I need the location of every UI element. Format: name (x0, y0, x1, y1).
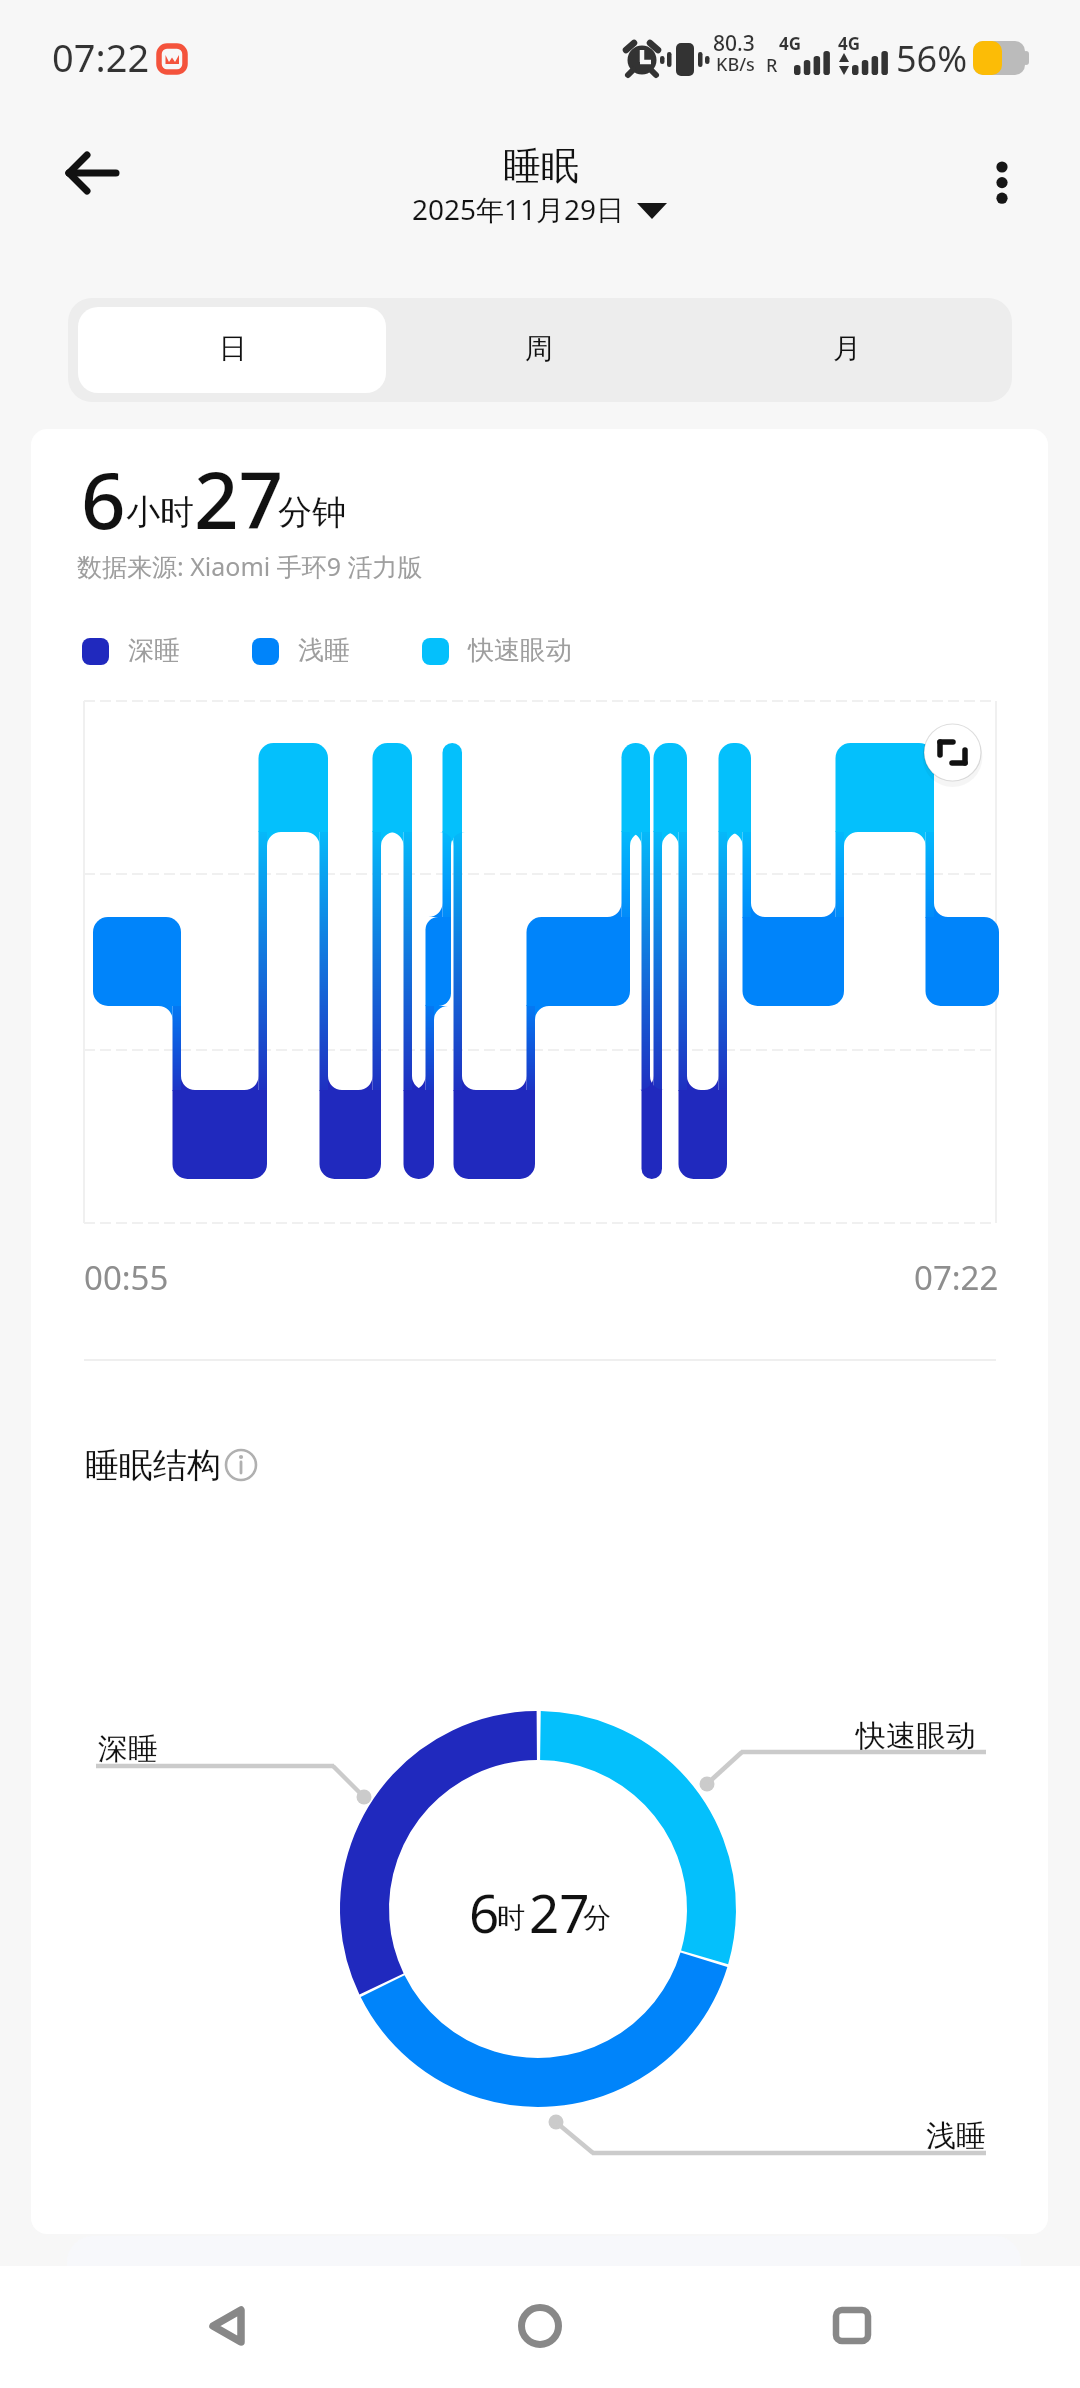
staticText: 56% (896, 34, 968, 83)
staticText: 27 (194, 446, 284, 552)
button[interactable] (382, 298, 696, 402)
button[interactable] (68, 298, 382, 402)
staticText: 时 (497, 1900, 525, 1935)
button[interactable]: Back (195, 2288, 275, 2368)
button[interactable]: Change date (400, 186, 680, 242)
staticText: 浅睡 (298, 634, 350, 667)
staticText: 07:22 (52, 31, 150, 83)
button[interactable]: Recents (810, 2288, 890, 2368)
staticText: 睡眠结构 (85, 1444, 221, 1487)
staticText: 2025年11月29日 (412, 190, 625, 228)
staticText: KB/s (716, 52, 755, 77)
staticText: 6 (469, 1876, 500, 1948)
staticText: 6 (81, 446, 126, 552)
staticText: 快速眼动 (468, 634, 572, 667)
staticText: 数据来源: Xiaomi 手环9 活力版 (77, 549, 423, 583)
staticText: 浅睡 (926, 2117, 986, 2155)
staticText: R (766, 53, 778, 78)
staticText: 小时 (126, 491, 194, 534)
staticText: 深睡 (98, 1730, 158, 1768)
staticText: 睡眠 (503, 142, 579, 190)
staticText: 4G (838, 32, 861, 55)
button[interactable]: About sleep structure (224, 1448, 262, 1486)
staticText: 27 (529, 1876, 590, 1948)
staticText: 00:55 (84, 1255, 169, 1300)
staticText: 周 (525, 331, 553, 366)
button[interactable]: Expand chart (924, 730, 980, 786)
staticText: 快速眼动 (856, 1717, 976, 1755)
staticText: 分钟 (278, 491, 346, 534)
button[interactable]: Back (42, 125, 142, 225)
staticText: 月 (833, 331, 861, 366)
staticText: 分 (583, 1900, 611, 1935)
staticText: 4G (779, 32, 802, 55)
staticText: 深睡 (128, 634, 180, 667)
button[interactable]: Home (500, 2288, 580, 2368)
button[interactable]: More options (952, 125, 1052, 225)
button[interactable] (696, 298, 1010, 402)
staticText: 日 (219, 331, 247, 366)
staticText: 07:22 (914, 1255, 999, 1300)
staticText: 80.3 (713, 29, 755, 58)
